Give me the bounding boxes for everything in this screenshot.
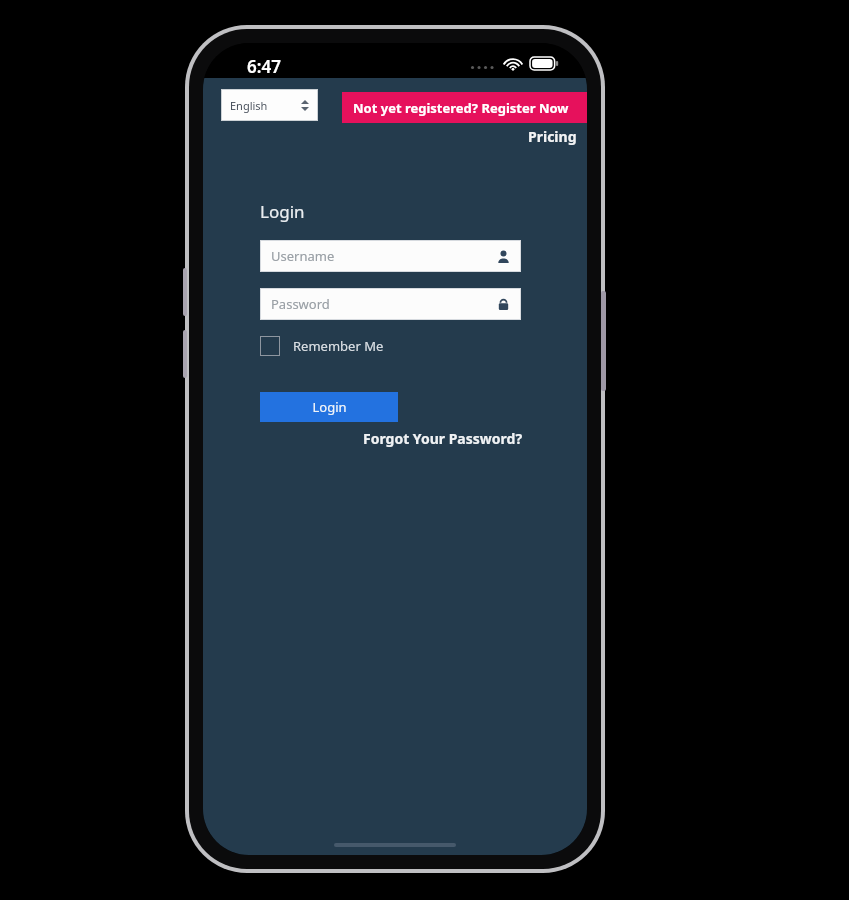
staticText: Not yet registered? Register Now	[353, 99, 569, 117]
button[interactable]: Remember Me	[260, 333, 384, 359]
button[interactable]: Username	[260, 240, 521, 272]
button[interactable]: Pricing	[203, 125, 587, 147]
staticText: 6:47	[247, 55, 281, 78]
button[interactable]: Password	[260, 288, 521, 320]
staticText: English	[230, 98, 268, 113]
staticText: Pricing	[528, 127, 577, 146]
staticText: Forgot Your Password?	[363, 429, 523, 448]
staticText: Username	[271, 247, 335, 265]
staticText: Password	[271, 295, 330, 313]
button[interactable]: Not yet registered? Register Now	[342, 92, 587, 123]
staticText: Login	[260, 200, 305, 223]
button[interactable]: Forgot Your Password?	[203, 427, 587, 449]
staticText: Login	[312, 398, 347, 416]
button[interactable]: English	[221, 89, 318, 121]
staticText: Remember Me	[293, 337, 384, 355]
button[interactable]: Login	[260, 392, 398, 422]
